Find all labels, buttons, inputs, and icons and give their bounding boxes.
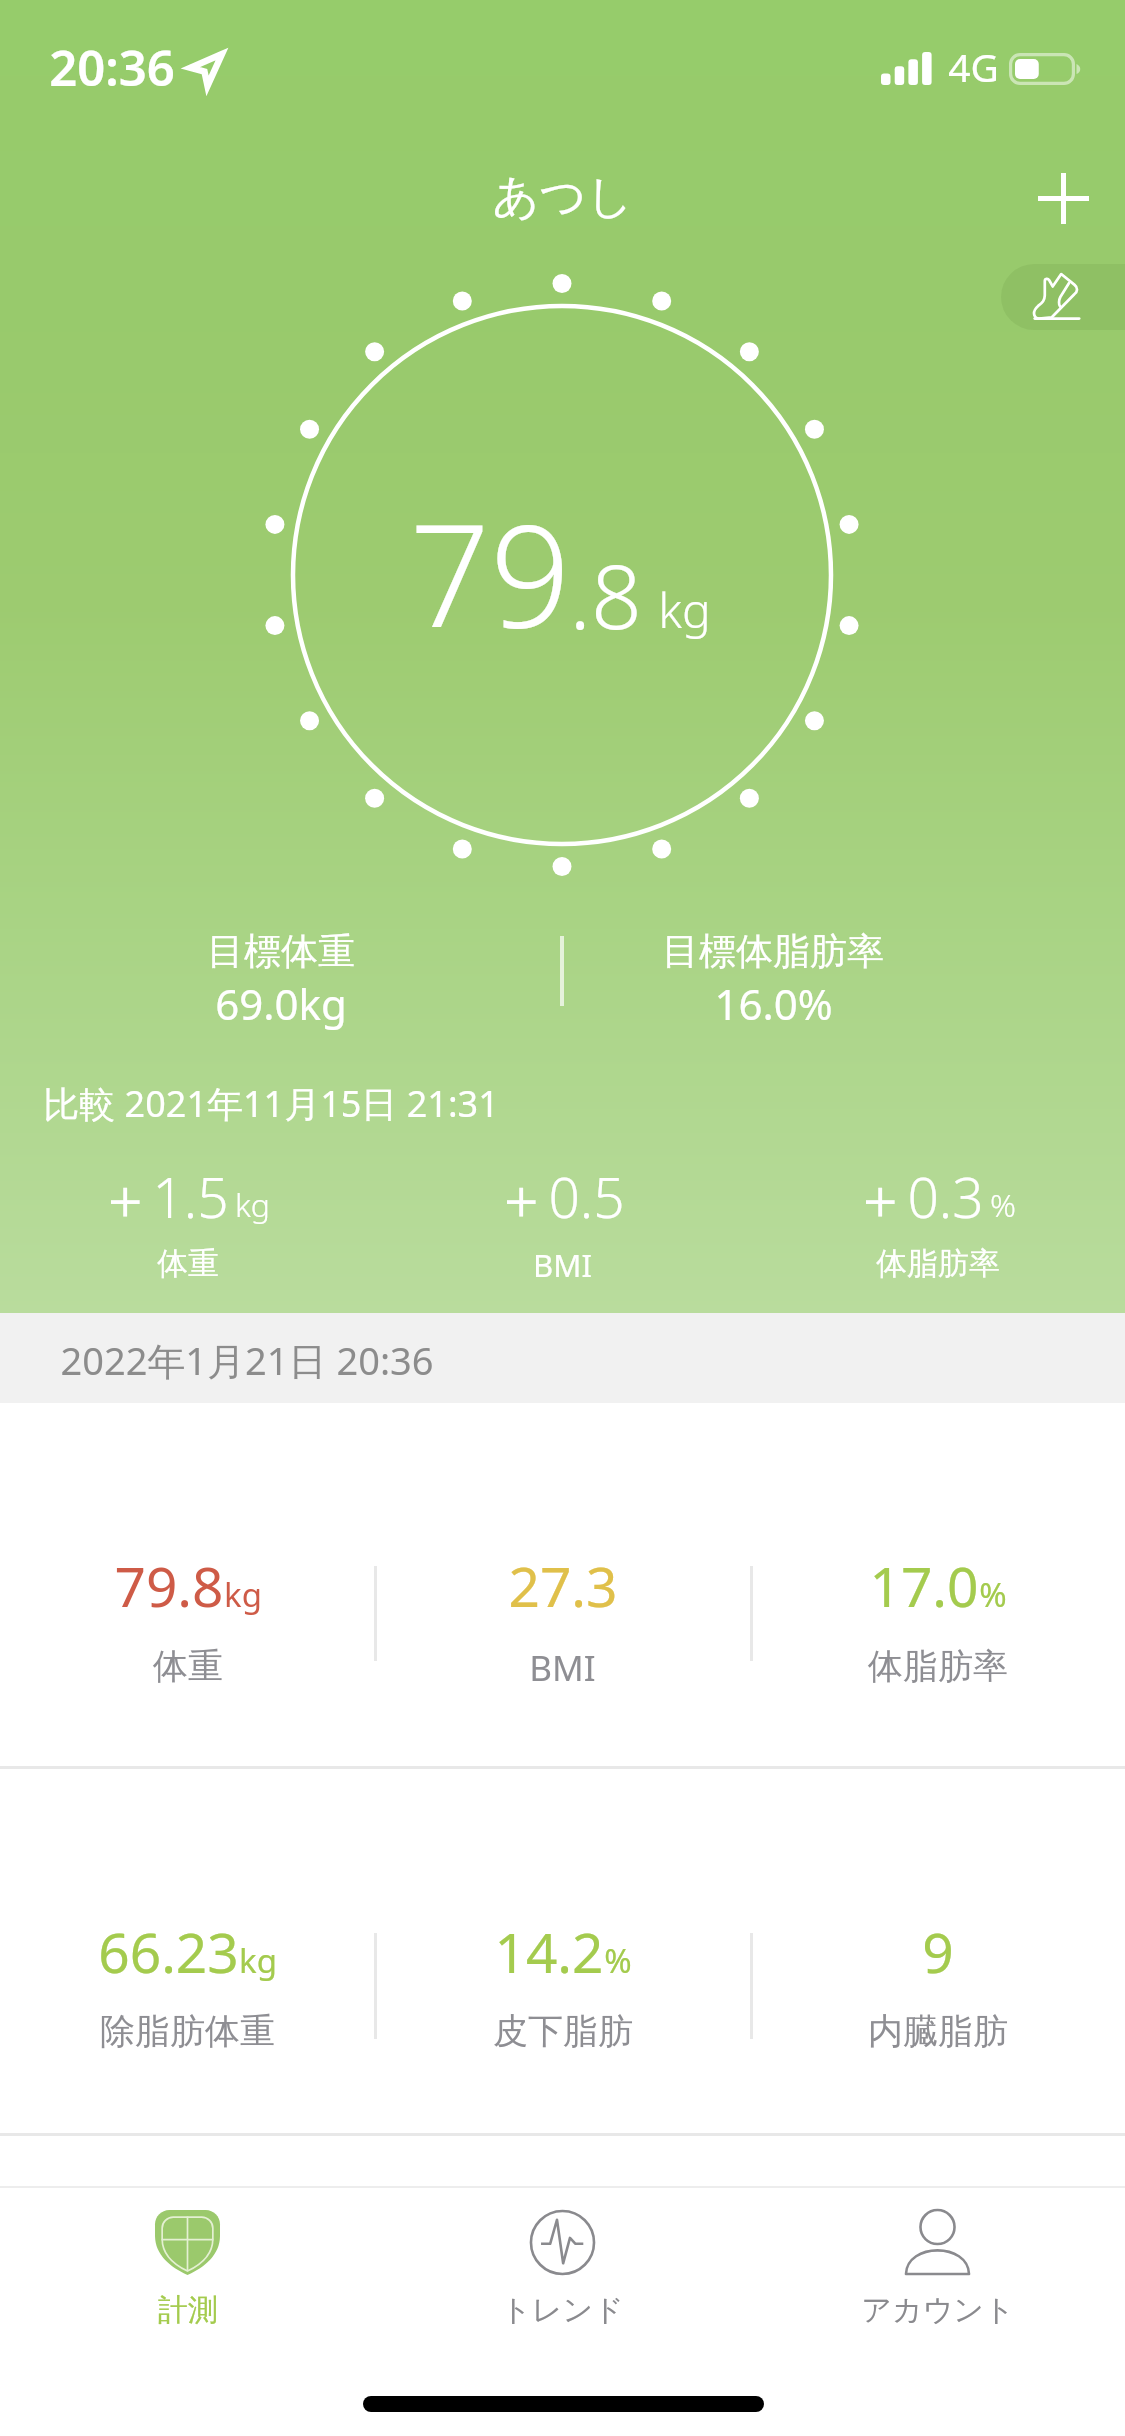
staticText: 9 <box>922 1914 954 1989</box>
staticText: 16.0% <box>714 975 833 1032</box>
staticText: あつし <box>492 168 634 226</box>
staticText: 69.0kg <box>215 975 347 1032</box>
button[interactable]: Activity tracking <box>1001 264 1125 330</box>
staticText: 体重 <box>157 1244 219 1283</box>
button[interactable]: アカウント <box>750 2188 1125 2368</box>
staticText: 79 <box>409 476 571 668</box>
staticText: % <box>990 1183 1016 1227</box>
button[interactable]: 計測 <box>0 2188 375 2368</box>
button[interactable] <box>0 1506 375 1721</box>
staticText: 内臓脂肪 <box>868 2009 1008 2053</box>
button[interactable] <box>0 1873 375 2099</box>
staticText: 2022年1月21日 20:36 <box>60 1334 434 1386</box>
staticText: 皮下脂肪 <box>493 2009 633 2053</box>
staticText: % <box>604 1938 632 1983</box>
button[interactable] <box>750 1506 1125 1721</box>
staticText: アカウント <box>861 2291 1015 2329</box>
staticText: 除脂肪体重 <box>100 2009 275 2053</box>
staticText: 4G <box>948 40 999 93</box>
staticText: kg <box>239 1938 277 1983</box>
staticText: 14.2 <box>494 1914 604 1989</box>
button[interactable] <box>375 1506 750 1721</box>
staticText: 体脂肪率 <box>868 1644 1008 1688</box>
staticText: kg <box>235 1183 270 1227</box>
staticText: BMI <box>529 1644 596 1692</box>
button[interactable] <box>750 1873 1125 2099</box>
button[interactable] <box>375 1873 750 2099</box>
staticText: トレンド <box>501 2291 624 2329</box>
staticText: kg <box>658 577 711 642</box>
staticText: 体重 <box>153 1644 223 1688</box>
button[interactable]: Add measurement <box>1003 138 1123 258</box>
staticText: 比較 2021年11月15日 21:31 <box>43 1079 499 1128</box>
staticText: 27.3 <box>508 1548 618 1623</box>
staticText: % <box>979 1572 1007 1617</box>
staticText: 計測 <box>158 2291 218 2329</box>
staticText: 目標体重 <box>207 928 355 975</box>
staticText: ＋0.5 <box>493 1159 625 1234</box>
staticText: ＋0.3 <box>852 1159 984 1234</box>
staticText: 20:36 <box>49 34 175 101</box>
staticText: ＋1.5 <box>97 1159 229 1234</box>
staticText: 体脂肪率 <box>876 1244 1000 1283</box>
staticText: 目標体脂肪率 <box>662 928 884 975</box>
staticText: BMI <box>533 1244 592 1286</box>
staticText: .8 <box>569 534 642 655</box>
button[interactable]: トレンド <box>375 2188 750 2368</box>
staticText: 79.8 <box>114 1548 224 1623</box>
staticText: 17.0 <box>869 1548 979 1623</box>
staticText: kg <box>224 1572 262 1617</box>
staticText: 66.23 <box>98 1914 239 1989</box>
